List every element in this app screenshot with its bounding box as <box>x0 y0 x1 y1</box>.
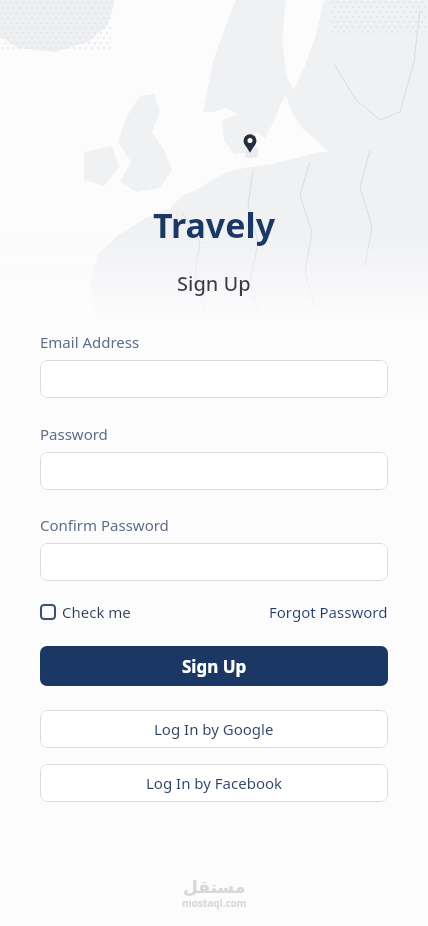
staticText: mostaql.com <box>182 896 247 910</box>
staticText: Password <box>40 424 108 444</box>
staticText: Confirm Password <box>40 515 169 535</box>
staticText: مستقل <box>183 877 246 897</box>
button[interactable] <box>40 543 388 581</box>
button[interactable] <box>40 360 388 398</box>
staticText: Sign Up <box>177 270 251 297</box>
staticText: Sign Up <box>182 655 247 678</box>
button[interactable] <box>40 452 388 490</box>
staticText: Check me <box>62 602 131 622</box>
button[interactable]: Log In by Facebook <box>40 764 388 802</box>
button[interactable]: Log In by Google <box>40 710 388 748</box>
button[interactable]: Forgot Password <box>309 602 428 622</box>
button[interactable] <box>40 604 56 620</box>
staticText: Log In by Google <box>154 719 274 739</box>
button[interactable]: Check me <box>62 602 131 622</box>
staticText: Log In by Facebook <box>146 773 283 793</box>
staticText: Forgot Password <box>269 602 388 622</box>
button[interactable]: Sign Up <box>40 646 388 686</box>
staticText: Travely <box>153 202 276 248</box>
staticText: Email Address <box>40 332 140 352</box>
